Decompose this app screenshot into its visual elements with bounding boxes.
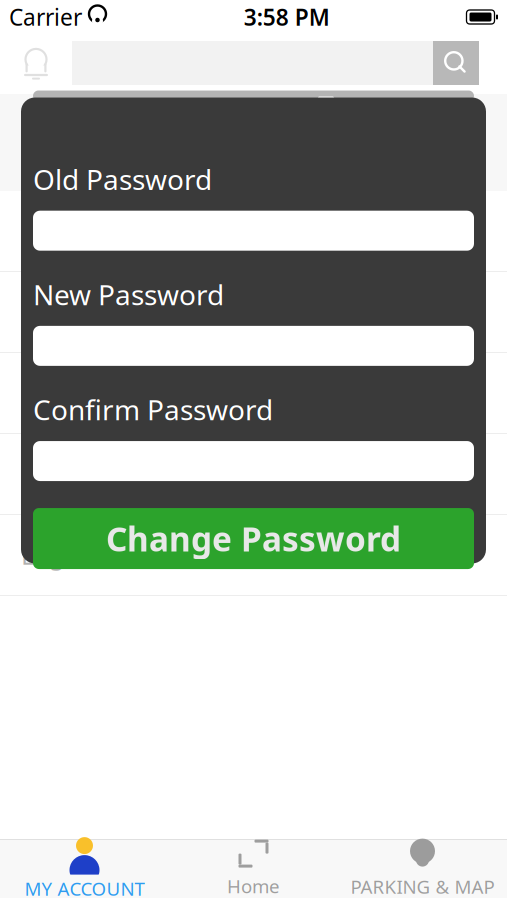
button[interactable]: Confirm Password — [33, 441, 474, 481]
staticText: PARKING & MAP — [350, 874, 494, 899]
button[interactable]: Notifications — [0, 32, 72, 94]
staticText: Confirm Password — [33, 391, 273, 428]
button[interactable]: Settings — [434, 90, 486, 150]
staticText: Home — [227, 874, 280, 898]
staticText: Terms And Conditions — [21, 457, 284, 491]
button[interactable]: New Password — [33, 326, 474, 366]
staticText: MY ACCOUNT — [24, 876, 144, 900]
button[interactable]: Log out — [0, 515, 507, 595]
button[interactable]: Change Password — [33, 508, 474, 569]
button[interactable]: Terms And Conditions — [0, 434, 507, 514]
button[interactable]: Old Password — [33, 211, 474, 251]
button[interactable]: Home — [169, 840, 338, 898]
staticText: Change Password — [106, 516, 401, 561]
staticText: Log out — [21, 538, 112, 572]
staticText: Old Password — [33, 160, 212, 198]
button[interactable]: Search — [433, 41, 479, 85]
button[interactable]: MY ACCOUNT — [0, 840, 169, 898]
staticText: Carrier — [9, 2, 82, 32]
button[interactable]: PARKING & MAP — [338, 840, 507, 898]
staticText: 3:58 PM — [244, 2, 330, 32]
staticText: New Password — [33, 276, 224, 313]
staticText: ahmed.tarek@businessboomers.net — [21, 165, 408, 195]
